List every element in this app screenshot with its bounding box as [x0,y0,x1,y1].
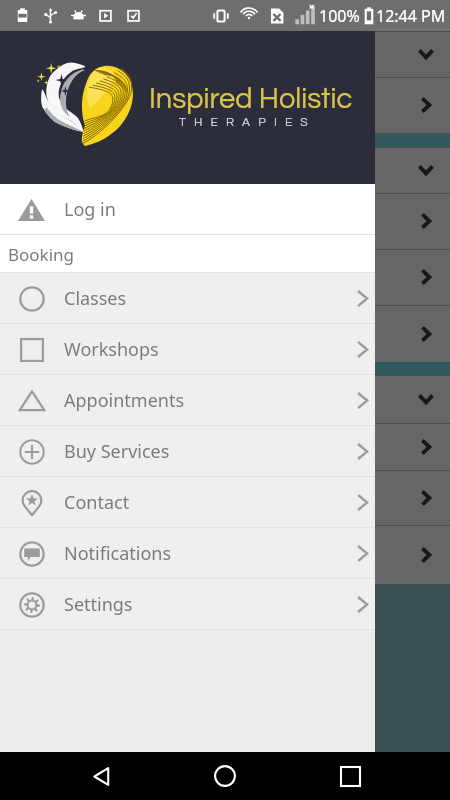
button[interactable] [0,193,450,249]
staticText: Contact [64,490,130,515]
button[interactable] [0,249,450,305]
button[interactable]: Settings [0,579,375,630]
button[interactable]: Notifications [0,528,375,579]
button[interactable]: Home [201,752,249,800]
button[interactable] [0,305,450,362]
button[interactable] [0,77,450,133]
button[interactable] [0,470,450,525]
button[interactable]: Log in [0,184,375,235]
button[interactable]: Buy Services [0,426,375,477]
staticText: Notifications [64,541,172,566]
staticText: 12:44 PM [376,5,446,27]
staticText: Classes [64,286,127,311]
button[interactable]: Workshops [0,324,375,375]
staticText: Workshops [64,337,159,362]
staticText: Booking [8,243,75,266]
staticText: Inspired Holistic [149,84,353,114]
button[interactable] [0,375,450,423]
button[interactable] [0,147,450,193]
staticText: Settings [64,592,133,617]
button[interactable] [0,525,450,584]
staticText: Buy Services [64,439,170,464]
staticText: 100% [319,5,360,27]
button[interactable]: Recents [326,752,374,800]
button[interactable] [0,31,450,77]
button[interactable]: Contact [0,477,375,528]
button[interactable]: Classes [0,273,375,324]
button[interactable]: Back [77,752,125,800]
staticText: T H E R A P I E S [179,116,311,128]
staticText: Appointments [64,388,185,413]
button[interactable]: Appointments [0,375,375,426]
button[interactable] [0,423,450,470]
staticText: Log in [64,197,116,222]
